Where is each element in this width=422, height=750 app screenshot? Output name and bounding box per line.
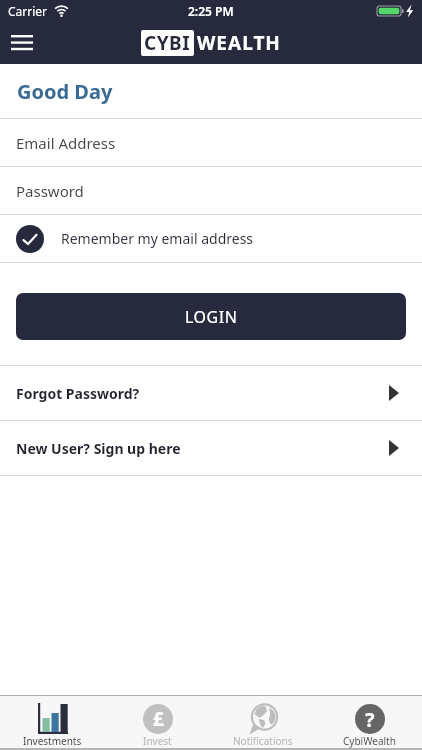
staticText: CybiWealth [343, 734, 396, 748]
button[interactable]: £ [105, 696, 210, 748]
staticText: WEALTH [197, 30, 281, 56]
button[interactable]: Email Address [0, 119, 422, 166]
button[interactable]: LOGIN [16, 293, 406, 340]
staticText: New User? Sign up here [16, 439, 181, 458]
button[interactable] [6, 27, 38, 59]
staticText: 2:25 PM [188, 3, 234, 19]
button[interactable]: ? [316, 696, 422, 748]
button[interactable]: Remember my email address [0, 215, 422, 262]
staticText: £ [153, 706, 164, 732]
button[interactable]: Investments [0, 696, 105, 748]
staticText: Investments [23, 734, 82, 748]
staticText: Invest [143, 734, 172, 748]
staticText: Forgot Password? [16, 384, 140, 403]
staticText: Good Day [17, 78, 113, 105]
staticText: LOGIN [185, 306, 238, 328]
button[interactable]: Password [0, 167, 422, 214]
staticText: ? [365, 706, 375, 733]
staticText: Email Address [16, 133, 116, 153]
staticText: Remember my email address [61, 229, 254, 248]
staticText: CYBI [144, 30, 191, 56]
staticText: Notifications [233, 734, 293, 748]
staticText: Carrier [8, 3, 48, 19]
button[interactable]: Forgot Password? [0, 366, 422, 420]
button[interactable]: New User? Sign up here [0, 421, 422, 475]
button[interactable]: Notifications [210, 696, 316, 748]
staticText: Password [16, 181, 84, 201]
